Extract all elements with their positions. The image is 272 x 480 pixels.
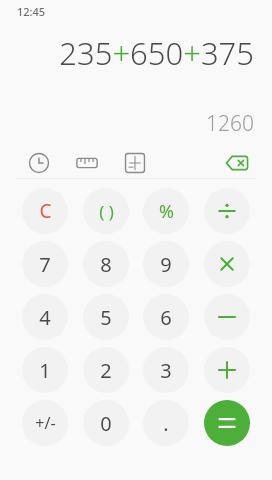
staticText: C [39, 198, 52, 224]
staticText: ( ) [99, 200, 114, 223]
button[interactable]: Unit converter [70, 148, 104, 178]
button[interactable]: 8 [83, 241, 129, 287]
staticText: . [163, 410, 169, 437]
button[interactable]: 9 [143, 241, 189, 287]
button[interactable]: % [143, 188, 189, 234]
button[interactable]: Plus [204, 347, 250, 393]
staticText: 1 [39, 357, 51, 384]
button[interactable]: . [143, 400, 189, 446]
staticText: % [159, 199, 174, 224]
staticText: 2 [100, 357, 112, 384]
button[interactable]: 0 [83, 400, 129, 446]
button[interactable]: 6 [143, 294, 189, 340]
staticText: 0 [100, 410, 112, 437]
staticText: 12:45 [17, 4, 46, 19]
staticText: 4 [39, 304, 51, 331]
button[interactable]: Scientific [118, 148, 152, 178]
staticText: 5 [100, 304, 112, 331]
button[interactable]: Equals [204, 400, 250, 446]
button[interactable]: Backspace [220, 148, 254, 178]
button[interactable]: 1 [22, 347, 68, 393]
button[interactable]: ( ) [83, 188, 129, 234]
button[interactable]: Minus [204, 294, 250, 340]
button[interactable]: Multiply [204, 241, 250, 287]
button[interactable]: Divide [204, 188, 250, 234]
staticText: 3 [160, 357, 172, 384]
button[interactable]: 7 [22, 241, 68, 287]
button[interactable]: 4 [22, 294, 68, 340]
staticText: 1260 [206, 109, 254, 138]
staticText: 235+650+375 [59, 32, 254, 74]
button[interactable]: C [22, 188, 68, 234]
button[interactable]: 2 [83, 347, 129, 393]
button[interactable]: +/- [22, 400, 68, 446]
staticText: 8 [100, 251, 112, 278]
staticText: 7 [39, 251, 51, 278]
button[interactable]: 5 [83, 294, 129, 340]
staticText: 6 [160, 304, 172, 331]
button[interactable]: 3 [143, 347, 189, 393]
button[interactable]: History [22, 148, 56, 178]
staticText: +/- [35, 412, 56, 434]
staticText: 9 [160, 251, 172, 278]
